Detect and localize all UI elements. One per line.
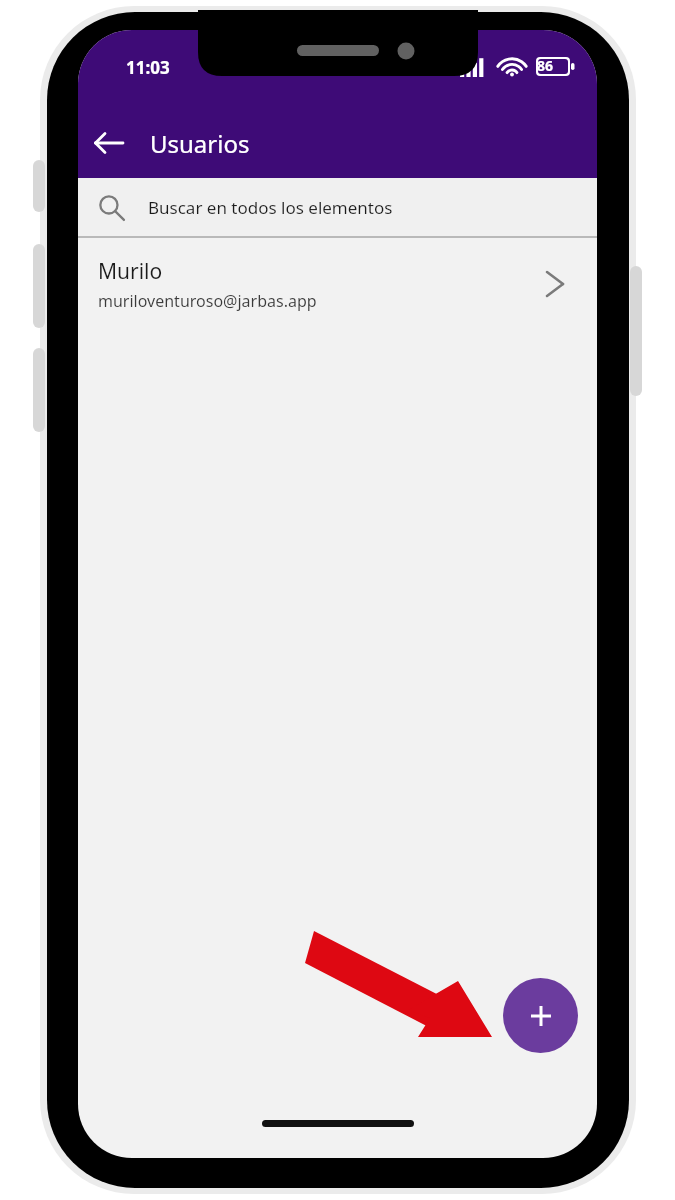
button[interactable]: Buscar en todos los elementos: [78, 178, 597, 236]
staticText: 11:03: [126, 56, 170, 79]
staticText: Buscar en todos los elementos: [148, 196, 393, 219]
staticText: muriloventuroso@jarbas.app: [98, 290, 317, 312]
staticText: 86: [537, 56, 554, 75]
button[interactable]: Agregar: [503, 978, 578, 1053]
button[interactable]: Atrás: [78, 112, 140, 174]
button[interactable]: Murilo: [78, 238, 597, 330]
other: Ver detalle: [527, 256, 583, 312]
staticText: Murilo: [98, 257, 163, 286]
staticText: Usuarios: [150, 127, 250, 160]
